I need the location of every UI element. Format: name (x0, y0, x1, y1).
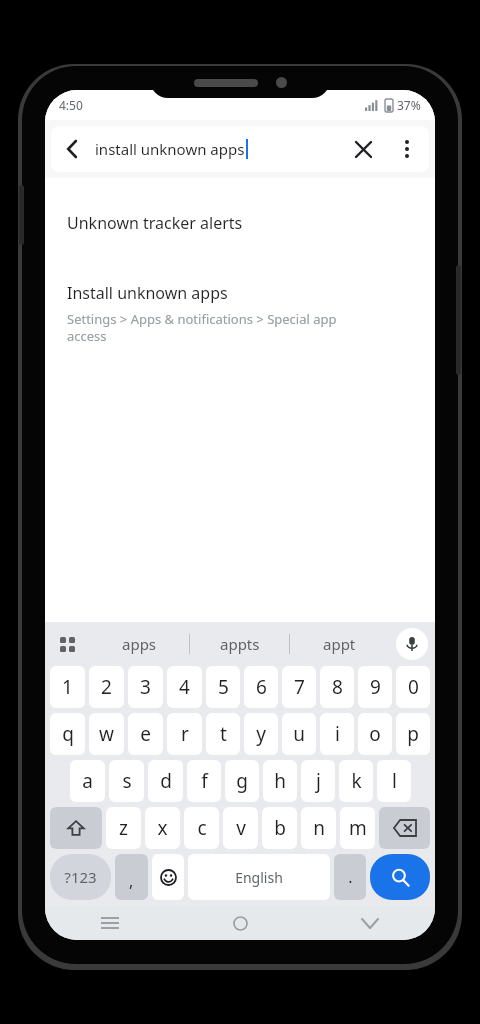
button[interactable]: , (115, 854, 148, 900)
staticText: 8 (332, 674, 343, 700)
staticText: ?123 (64, 867, 97, 887)
button[interactable]: t (206, 713, 240, 755)
button[interactable]: Voice input (389, 622, 435, 666)
button[interactable]: v (223, 807, 258, 849)
staticText: , (129, 870, 134, 892)
button[interactable]: Emoji (152, 854, 184, 900)
button[interactable]: appt (290, 622, 389, 666)
button[interactable]: 9 (358, 666, 392, 708)
staticText: . (348, 866, 353, 888)
button[interactable]: s (109, 760, 144, 802)
button[interactable]: z (106, 807, 141, 849)
button[interactable]: w (89, 713, 124, 755)
staticText: 3 (140, 674, 151, 700)
button[interactable]: q (50, 713, 85, 755)
button[interactable]: c (184, 807, 219, 849)
staticText: n (313, 815, 325, 841)
staticText: z (119, 815, 128, 841)
button[interactable]: Hide keyboard (305, 906, 435, 940)
button[interactable]: Keyboard options (45, 622, 89, 666)
button[interactable]: 4 (167, 666, 202, 708)
button[interactable]: k (339, 760, 373, 802)
button[interactable]: 6 (244, 666, 278, 708)
staticText: 37% (397, 97, 421, 113)
button[interactable]: m (340, 807, 375, 849)
staticText: appts (220, 634, 260, 654)
button[interactable]: i (320, 713, 354, 755)
staticText: e (140, 721, 151, 747)
button[interactable]: e (128, 713, 163, 755)
staticText: appt (323, 634, 356, 654)
button[interactable]: a (70, 760, 105, 802)
button[interactable]: f (187, 760, 221, 802)
staticText: install unknown apps (95, 139, 245, 159)
staticText: Settings > Apps & notifications > Specia… (67, 310, 337, 345)
button[interactable]: Search (370, 854, 430, 900)
staticText: s (122, 768, 132, 794)
staticText: Install unknown apps (67, 282, 228, 304)
staticText: Unknown tracker alerts (67, 212, 243, 234)
button[interactable]: Unknown tracker alerts (45, 202, 435, 244)
staticText: f (201, 768, 208, 794)
staticText: v (236, 815, 246, 841)
button[interactable]: 3 (128, 666, 163, 708)
button[interactable]: 0 (396, 666, 430, 708)
staticText: 2 (101, 674, 112, 700)
staticText: 5 (218, 674, 229, 700)
staticText: t (220, 721, 227, 747)
button[interactable]: 1 (50, 666, 85, 708)
button[interactable]: r (167, 713, 202, 755)
staticText: 9 (370, 674, 381, 700)
staticText: c (197, 815, 207, 841)
button[interactable]: u (282, 713, 316, 755)
staticText: g (236, 768, 248, 794)
button[interactable]: h (263, 760, 297, 802)
button[interactable]: 5 (206, 666, 240, 708)
button[interactable]: . (334, 854, 366, 900)
staticText: d (160, 768, 172, 794)
button[interactable]: 7 (282, 666, 316, 708)
button[interactable]: ?123 (50, 854, 111, 900)
staticText: 1 (62, 674, 73, 700)
staticText: x (157, 815, 168, 841)
staticText: y (256, 721, 266, 747)
staticText: p (407, 721, 419, 747)
button[interactable]: appts (190, 622, 289, 666)
button[interactable]: Backspace (379, 807, 430, 849)
button[interactable]: More options (385, 127, 429, 171)
staticText: 0 (408, 674, 419, 700)
staticText: i (335, 721, 340, 747)
button[interactable]: n (301, 807, 336, 849)
button[interactable]: English (188, 854, 330, 900)
button[interactable]: Back (51, 127, 95, 171)
button[interactable]: y (244, 713, 278, 755)
staticText: English (235, 868, 283, 887)
staticText: w (99, 721, 114, 747)
button[interactable]: apps (89, 622, 189, 666)
button[interactable]: b (262, 807, 297, 849)
button[interactable]: d (148, 760, 183, 802)
button[interactable]: 2 (89, 666, 124, 708)
staticText: r (181, 721, 189, 747)
staticText: 4 (179, 674, 190, 700)
staticText: h (274, 768, 286, 794)
button[interactable]: Install unknown apps (45, 276, 435, 351)
button[interactable]: g (225, 760, 259, 802)
staticText: m (349, 815, 367, 841)
button[interactable]: Clear (341, 127, 385, 171)
staticText: apps (122, 634, 157, 654)
button[interactable]: 8 (320, 666, 354, 708)
staticText: a (82, 768, 93, 794)
button[interactable]: o (358, 713, 392, 755)
button[interactable]: Recents (45, 906, 175, 940)
staticText: u (293, 721, 305, 747)
button[interactable]: l (377, 760, 411, 802)
staticText: b (274, 815, 286, 841)
button[interactable]: j (301, 760, 335, 802)
button[interactable]: Home (175, 906, 305, 940)
staticText: q (62, 721, 74, 747)
button[interactable]: x (145, 807, 180, 849)
button[interactable]: p (396, 713, 430, 755)
button[interactable]: Shift (50, 807, 102, 849)
staticText: l (392, 768, 397, 794)
